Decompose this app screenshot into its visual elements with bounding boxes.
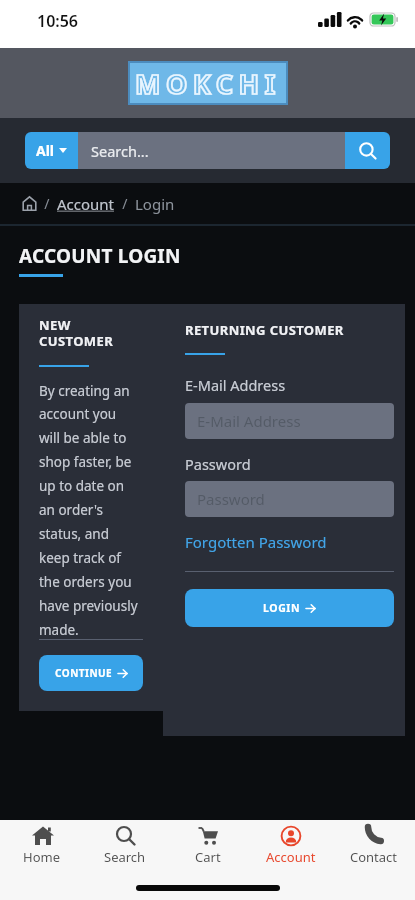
staticText: Search... — [91, 141, 149, 161]
staticText: LOGIN — [263, 601, 301, 615]
staticText: Account — [266, 848, 316, 866]
staticText: E-Mail Address — [185, 375, 286, 395]
button[interactable]: Account — [249, 822, 332, 900]
staticText: NEW CUSTOMER — [39, 316, 114, 350]
staticText: Password — [197, 489, 265, 509]
button[interactable]: Contact — [332, 822, 415, 900]
button[interactable] — [345, 132, 390, 169]
button[interactable]: Cart — [166, 822, 249, 900]
staticText: Search — [104, 848, 146, 866]
staticText: / — [37, 194, 57, 213]
staticText: E-Mail Address — [197, 411, 301, 431]
staticText: RETURNING CUSTOMER — [185, 321, 344, 339]
staticText: By creating an account you will be able … — [39, 382, 138, 639]
button[interactable]: Password — [185, 481, 394, 517]
button[interactable]: LOGIN — [185, 589, 394, 627]
button[interactable]: CONTINUE — [39, 655, 143, 691]
button[interactable]: All — [25, 132, 78, 169]
button[interactable]: E-Mail Address — [185, 403, 394, 439]
staticText: MOKCHI — [135, 65, 281, 102]
staticText: / — [115, 194, 135, 213]
staticText: 10:56 — [37, 10, 79, 32]
button[interactable]: Search — [83, 822, 166, 900]
button[interactable]: Search... — [78, 132, 345, 169]
staticText: Home — [23, 848, 60, 866]
button[interactable] — [22, 196, 37, 211]
staticText: Password — [185, 454, 251, 474]
staticText: All — [36, 141, 55, 160]
staticText: CONTINUE — [55, 666, 113, 680]
button[interactable]: Home — [0, 822, 83, 900]
staticText: Contact — [350, 848, 398, 866]
button[interactable]: Forgotten Password — [185, 532, 327, 552]
staticText: Cart — [195, 848, 221, 866]
button[interactable]: MOKCHI — [130, 63, 286, 103]
button[interactable]: Account — [57, 194, 115, 214]
staticText: ACCOUNT LOGIN — [19, 243, 181, 269]
staticText: Login — [135, 194, 175, 214]
